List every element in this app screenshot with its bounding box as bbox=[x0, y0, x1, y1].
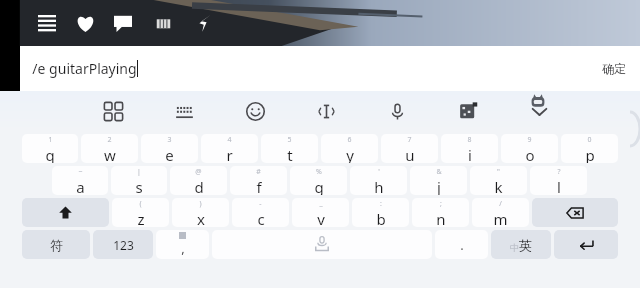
staticText: " bbox=[497, 167, 500, 177]
staticText: d bbox=[194, 177, 204, 195]
staticText: 123 bbox=[113, 237, 134, 253]
button[interactable]: Enter bbox=[554, 230, 618, 259]
button[interactable]: Stickers bbox=[451, 94, 485, 128]
button[interactable]: % bbox=[290, 166, 347, 195]
staticText: 中 bbox=[510, 242, 519, 253]
button[interactable]: Backspace bbox=[532, 198, 618, 227]
staticText: k bbox=[494, 177, 503, 195]
staticText: /e guitarPlaying bbox=[32, 59, 137, 78]
button[interactable]: 确定 bbox=[588, 53, 640, 84]
staticText: - bbox=[259, 199, 262, 209]
button[interactable]: 2 bbox=[81, 134, 138, 163]
button[interactable]: 8 bbox=[441, 134, 498, 163]
staticText: 5 bbox=[287, 135, 292, 145]
button[interactable]: : bbox=[352, 198, 409, 227]
button[interactable]: 5 bbox=[261, 134, 318, 163]
button[interactable]: _ bbox=[292, 198, 349, 227]
staticText: ' bbox=[378, 167, 380, 177]
staticText: 3 bbox=[167, 135, 172, 145]
staticText: w bbox=[104, 145, 116, 163]
button[interactable]: & bbox=[410, 166, 467, 195]
staticText: j bbox=[437, 177, 441, 195]
staticText: i bbox=[468, 145, 472, 163]
button[interactable]: Collapse keyboard bbox=[522, 94, 556, 128]
staticText: , bbox=[181, 239, 185, 257]
staticText: l bbox=[557, 177, 561, 195]
button[interactable]: Menu bbox=[34, 10, 60, 36]
button[interactable]: @ bbox=[170, 166, 227, 195]
staticText: s bbox=[135, 177, 143, 195]
button[interactable]: Shift bbox=[22, 198, 109, 227]
button[interactable]: Text cursor bbox=[309, 94, 343, 128]
button[interactable]: Emoji badge bbox=[528, 92, 548, 112]
staticText: 2 bbox=[107, 135, 112, 145]
staticText: n bbox=[436, 209, 446, 227]
button[interactable]: Emoji bbox=[238, 94, 272, 128]
staticText: % bbox=[316, 167, 322, 177]
staticText: r bbox=[226, 145, 233, 163]
button[interactable]: | bbox=[111, 166, 167, 195]
button[interactable]: ~ bbox=[52, 166, 108, 195]
staticText: ) bbox=[199, 199, 202, 209]
staticText: & bbox=[436, 167, 442, 177]
button[interactable]: - bbox=[232, 198, 289, 227]
staticText: 1 bbox=[48, 135, 53, 145]
button[interactable]: 6 bbox=[321, 134, 378, 163]
staticText: ; bbox=[440, 199, 442, 209]
button[interactable]: . bbox=[435, 230, 488, 259]
button[interactable]: Keyboard bbox=[167, 94, 201, 128]
staticText: u bbox=[405, 145, 415, 163]
button[interactable]: /e guitarPlaying bbox=[20, 46, 640, 91]
button[interactable]: 9 bbox=[501, 134, 558, 163]
staticText: | bbox=[137, 167, 141, 177]
button[interactable]: # bbox=[230, 166, 287, 195]
button[interactable]: 符 bbox=[22, 230, 90, 259]
staticText: / bbox=[499, 199, 502, 209]
staticText: 4 bbox=[227, 135, 232, 145]
staticText: q bbox=[45, 145, 55, 163]
staticText: y bbox=[346, 145, 354, 163]
button[interactable]: Comment bbox=[110, 10, 136, 36]
staticText: a bbox=[76, 177, 85, 195]
staticText: e bbox=[165, 145, 174, 163]
button[interactable]: Voice input bbox=[380, 94, 414, 128]
button[interactable]: 0 bbox=[561, 134, 618, 163]
button[interactable]: Like bbox=[72, 10, 98, 36]
button[interactable]: Apps bbox=[96, 94, 130, 128]
button[interactable]: 1 bbox=[22, 134, 78, 163]
button[interactable]: Share bbox=[190, 10, 216, 36]
button[interactable]: ? bbox=[530, 166, 587, 195]
staticText: ~ bbox=[78, 167, 83, 177]
staticText: _ bbox=[319, 199, 323, 209]
staticText: ? bbox=[557, 167, 561, 177]
staticText: c bbox=[257, 209, 265, 227]
staticText: o bbox=[525, 145, 535, 163]
button[interactable]: 3 bbox=[141, 134, 198, 163]
staticText: : bbox=[380, 199, 382, 209]
button[interactable]: " bbox=[470, 166, 527, 195]
staticText: # bbox=[256, 167, 261, 177]
staticText: 0 bbox=[587, 135, 592, 145]
staticText: b bbox=[376, 209, 386, 227]
button[interactable]: ' bbox=[350, 166, 407, 195]
button[interactable]: ) bbox=[172, 198, 229, 227]
staticText: . bbox=[460, 236, 464, 254]
button[interactable]: Space bbox=[212, 230, 432, 259]
staticText: 6 bbox=[347, 135, 352, 145]
staticText: 确定 bbox=[602, 61, 626, 76]
staticText: t bbox=[287, 145, 293, 163]
staticText: f bbox=[256, 177, 262, 195]
staticText: 英 bbox=[519, 237, 532, 253]
button[interactable]: Gift bbox=[150, 10, 176, 36]
staticText: 7 bbox=[407, 135, 412, 145]
staticText: 8 bbox=[467, 135, 472, 145]
staticText: 符 bbox=[50, 237, 63, 253]
button[interactable]: ; bbox=[412, 198, 469, 227]
button[interactable]: Comma bbox=[156, 230, 209, 259]
button[interactable]: 123 bbox=[93, 230, 153, 259]
button[interactable]: / bbox=[472, 198, 529, 227]
button[interactable]: ( bbox=[112, 198, 169, 227]
button[interactable]: 4 bbox=[201, 134, 258, 163]
button[interactable]: 7 bbox=[381, 134, 438, 163]
button[interactable]: Language bbox=[491, 230, 551, 259]
